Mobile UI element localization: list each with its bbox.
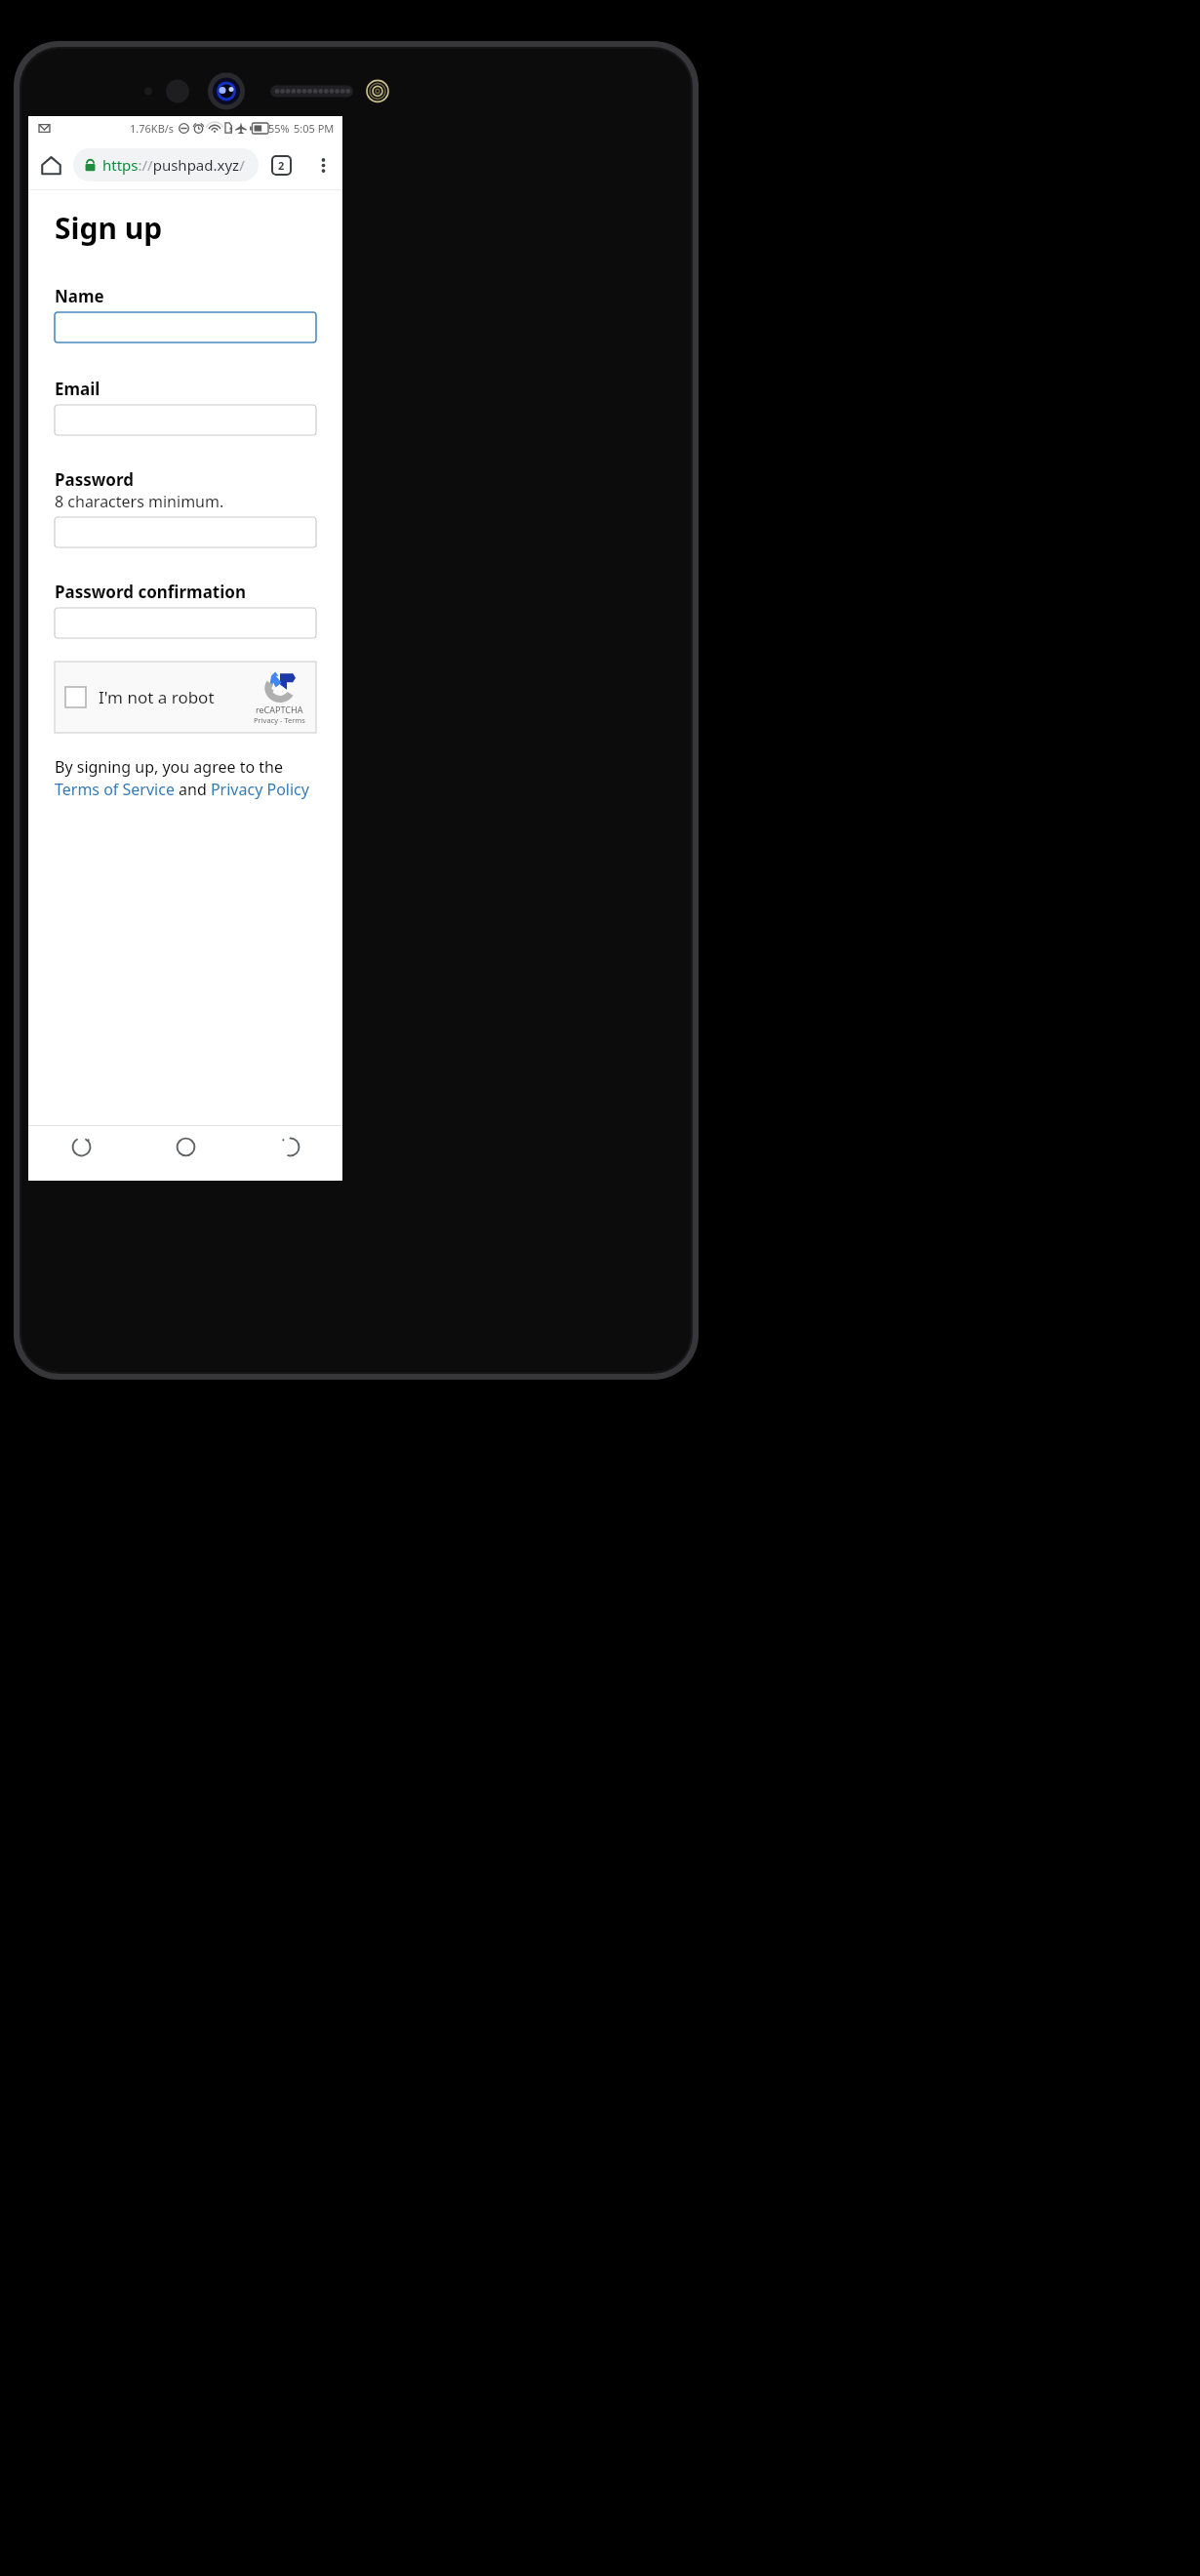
button[interactable]: Tabs: 2 open	[259, 142, 303, 187]
staticText: 55%	[268, 121, 290, 136]
staticText: https://pushpad.xyz/use	[102, 155, 248, 175]
button[interactable]	[55, 608, 316, 638]
button[interactable]: Home	[28, 142, 73, 187]
staticText: Privacy - Terms	[254, 715, 305, 725]
button[interactable]: https://pushpad.xyz/use	[73, 148, 259, 181]
staticText: Sign up	[55, 208, 163, 248]
staticText: Password	[55, 468, 134, 491]
staticText: Email	[55, 378, 100, 400]
button[interactable]	[55, 312, 316, 342]
staticText: 1.76KB/s	[130, 121, 175, 136]
button[interactable]: I'm not a robot	[55, 662, 316, 733]
staticText: Name	[55, 285, 104, 307]
button[interactable]	[55, 517, 316, 547]
button[interactable]	[55, 405, 316, 435]
staticText: Password confirmation	[55, 581, 246, 603]
button[interactable]: Home	[134, 1126, 238, 1181]
button[interactable]: More options	[303, 145, 342, 184]
staticText: I'm not a robot	[99, 686, 215, 708]
staticText: 2	[278, 158, 285, 173]
button[interactable]: Recent apps	[28, 1126, 134, 1181]
staticText: 5:05 PM	[294, 121, 335, 136]
button[interactable]: By signing up, you agree to the Terms of…	[55, 756, 316, 800]
staticText: 8 characters minimum.	[55, 491, 224, 512]
button[interactable]: Back	[238, 1126, 342, 1181]
staticText: reCAPTCHA	[256, 704, 303, 715]
